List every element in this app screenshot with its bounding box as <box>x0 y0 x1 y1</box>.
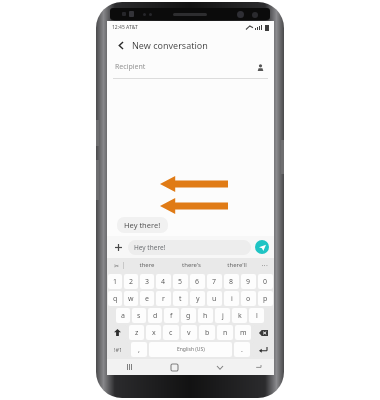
staticText: English (US) <box>177 346 205 353</box>
button[interactable]: Hey there! <box>117 217 168 233</box>
staticText: there'll <box>227 261 247 269</box>
button[interactable]: 6 <box>190 274 205 289</box>
button[interactable]: Backspace <box>253 325 273 340</box>
staticText: 4 <box>161 277 166 287</box>
button[interactable]: h <box>198 308 213 323</box>
button[interactable]: there <box>124 258 169 272</box>
staticText: 1 <box>113 277 118 287</box>
staticText: !#1 <box>114 346 123 353</box>
staticText: y <box>196 294 200 304</box>
staticText: d <box>153 311 158 321</box>
button[interactable]: n <box>217 325 233 340</box>
staticText: g <box>186 311 191 321</box>
staticText: h <box>203 311 208 321</box>
staticText: f <box>170 311 173 321</box>
button[interactable]: Send <box>255 240 269 254</box>
button[interactable]: 0 <box>258 274 273 289</box>
button[interactable]: 1 <box>108 274 122 289</box>
button[interactable]: 5 <box>173 274 188 289</box>
button[interactable]: 9 <box>241 274 256 289</box>
button[interactable]: Back <box>113 37 129 53</box>
button[interactable]: Shift <box>108 325 127 340</box>
button[interactable]: w <box>124 291 138 306</box>
staticText: 6 <box>195 277 200 287</box>
button[interactable]: l <box>249 308 264 323</box>
staticText: l <box>256 311 258 321</box>
button[interactable]: q <box>108 291 122 306</box>
button[interactable]: y <box>190 291 205 306</box>
staticText: b <box>205 328 210 338</box>
button[interactable]: o <box>241 291 256 306</box>
button[interactable]: Back <box>197 359 242 375</box>
button[interactable]: , <box>131 342 147 357</box>
staticText: 2 <box>129 277 134 287</box>
button[interactable]: a <box>116 308 130 323</box>
staticText: New conversation <box>132 39 208 51</box>
button[interactable]: . <box>234 342 250 357</box>
button[interactable]: Home <box>152 359 197 375</box>
staticText: . <box>241 345 243 355</box>
staticText: 0 <box>263 277 268 287</box>
staticText: 7 <box>212 277 217 287</box>
button[interactable]: 4 <box>156 274 171 289</box>
button[interactable]: k <box>232 308 247 323</box>
button[interactable]: p <box>258 291 273 306</box>
staticText: p <box>263 294 268 304</box>
button[interactable]: there'll <box>214 258 259 272</box>
staticText: ✂ <box>114 262 120 269</box>
button[interactable]: Recipient <box>115 56 266 78</box>
staticText: s <box>137 311 141 321</box>
staticText: there <box>139 261 155 269</box>
staticText: z <box>135 328 139 338</box>
button[interactable]: Enter <box>252 342 273 357</box>
button[interactable]: f <box>164 308 179 323</box>
button[interactable]: Clipboard <box>111 260 122 271</box>
button[interactable]: b <box>199 325 215 340</box>
staticText: 8 <box>229 277 234 287</box>
button[interactable]: r <box>156 291 171 306</box>
button[interactable]: t <box>173 291 188 306</box>
button[interactable]: More suggestions <box>259 260 270 271</box>
button[interactable]: e <box>140 291 154 306</box>
staticText: j <box>222 311 224 321</box>
staticText: v <box>187 328 191 338</box>
other: Contacts <box>254 61 266 73</box>
button[interactable]: d <box>148 308 162 323</box>
staticText: 9 <box>246 277 251 287</box>
staticText: Recipient <box>115 62 146 72</box>
button[interactable]: x <box>146 325 161 340</box>
staticText: 5 <box>178 277 183 287</box>
button[interactable]: Add attachment <box>112 241 125 254</box>
staticText: w <box>128 294 134 304</box>
staticText: o <box>246 294 251 304</box>
button[interactable]: 3 <box>140 274 154 289</box>
button[interactable]: c <box>163 325 179 340</box>
staticText: there's <box>182 261 201 269</box>
button[interactable]: Hide keyboard <box>242 359 274 375</box>
staticText: n <box>223 328 228 338</box>
staticText: Hey there! <box>124 220 161 230</box>
button[interactable]: 8 <box>224 274 239 289</box>
staticText: Hey there! <box>134 243 166 252</box>
staticText: u <box>212 294 217 304</box>
button[interactable]: m <box>235 325 251 340</box>
button[interactable]: Hey there! <box>128 240 251 255</box>
staticText: e <box>145 294 149 304</box>
button[interactable]: 2 <box>124 274 138 289</box>
button[interactable]: g <box>181 308 196 323</box>
button[interactable]: i <box>224 291 239 306</box>
button[interactable]: Symbols <box>108 342 129 357</box>
button[interactable]: 7 <box>207 274 222 289</box>
button[interactable]: Recents <box>107 359 152 375</box>
staticText: i <box>231 294 233 304</box>
button[interactable]: v <box>181 325 197 340</box>
button[interactable]: there's <box>169 258 214 272</box>
staticText: q <box>113 294 118 304</box>
button[interactable]: s <box>132 308 146 323</box>
button[interactable]: z <box>129 325 144 340</box>
staticText: ⋯ <box>261 262 268 270</box>
button[interactable]: English (US) <box>149 342 232 357</box>
staticText: , <box>138 345 140 355</box>
button[interactable]: j <box>215 308 230 323</box>
button[interactable]: u <box>207 291 222 306</box>
